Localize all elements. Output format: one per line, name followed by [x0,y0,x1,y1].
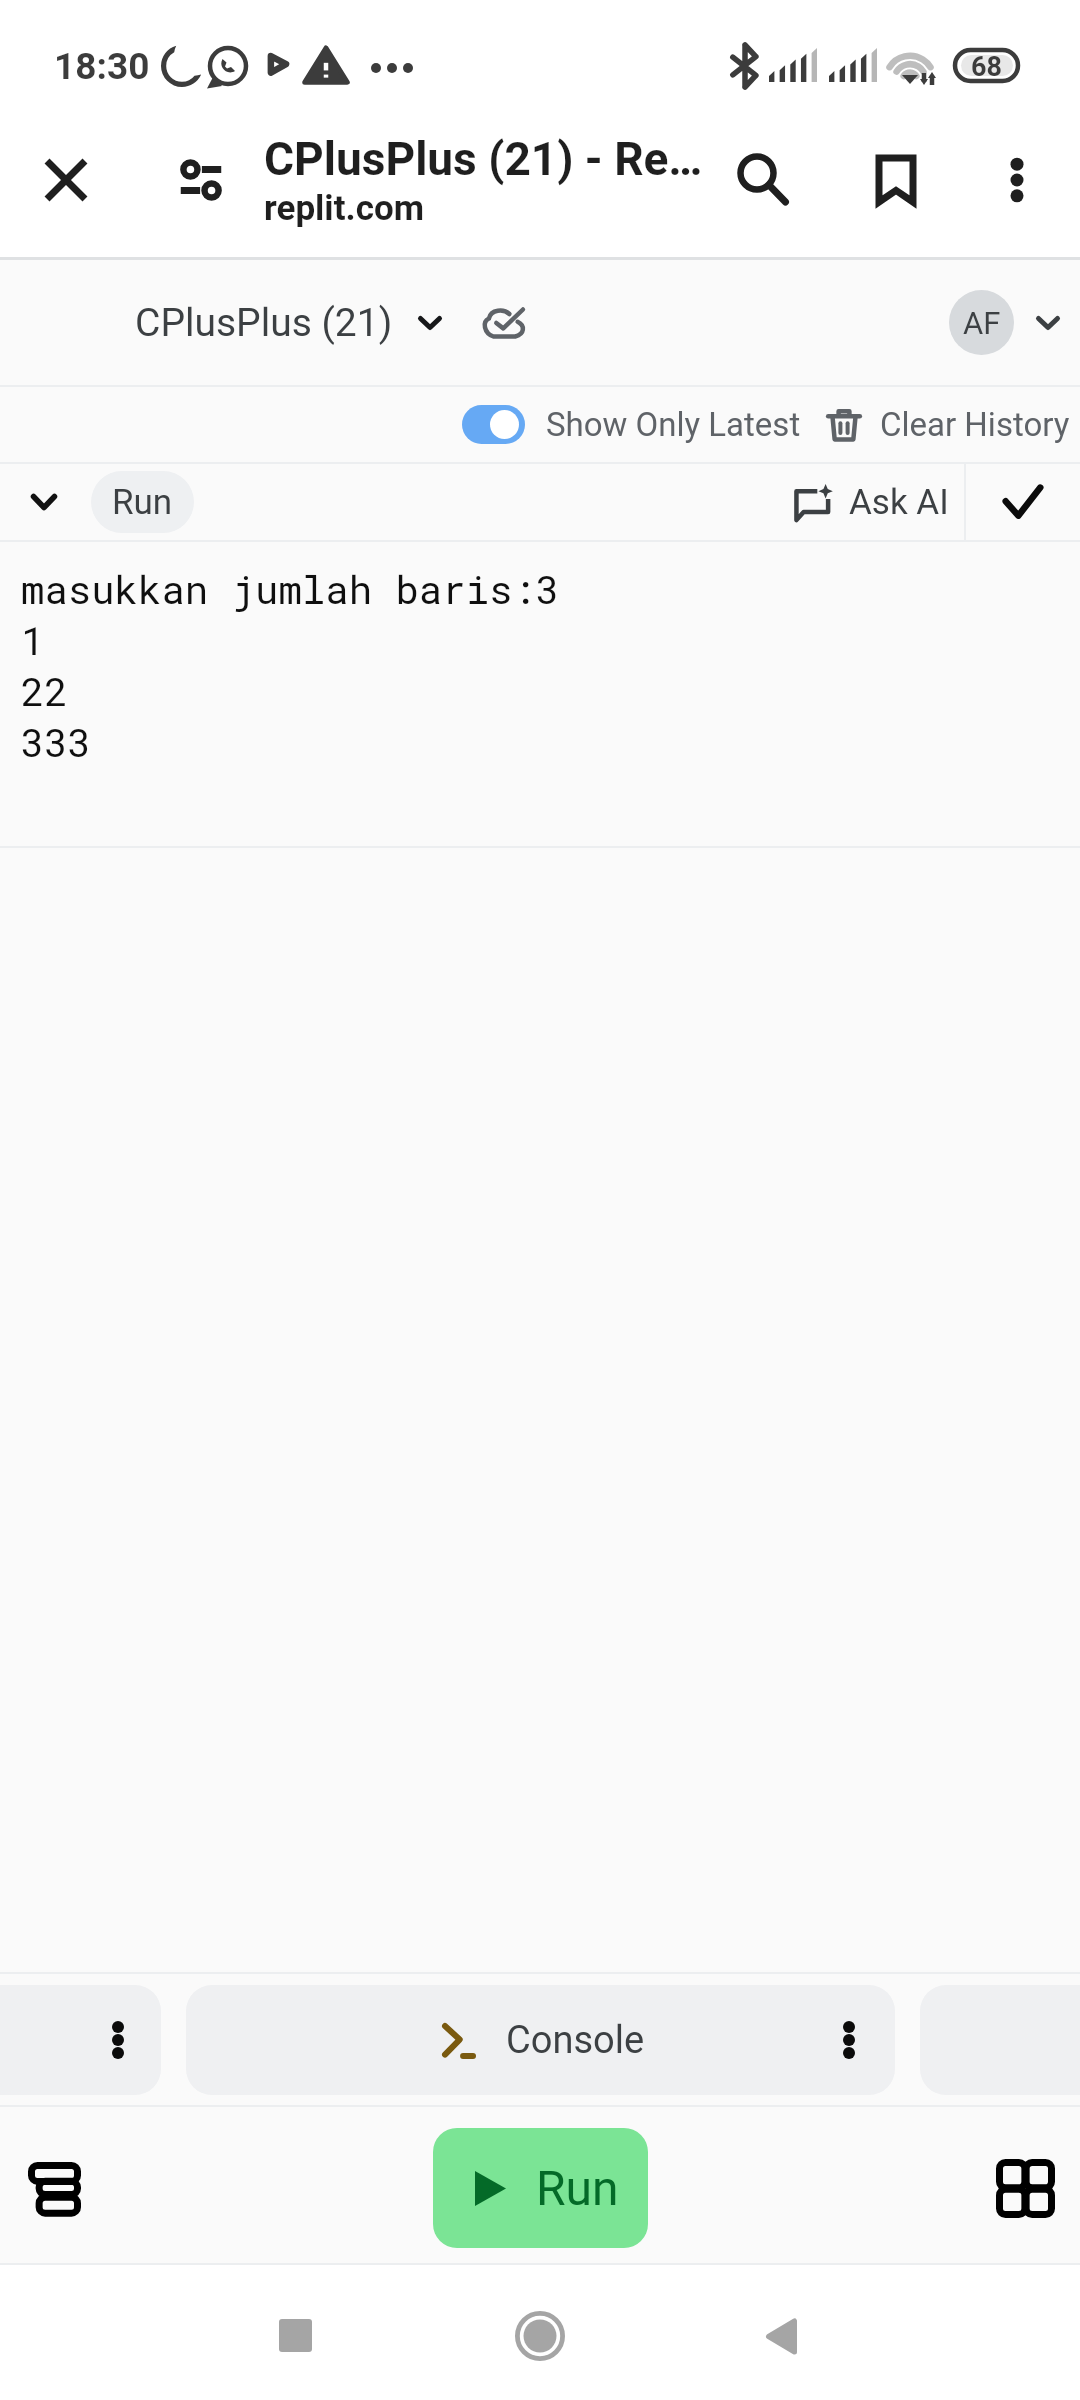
button[interactable]: Run [91,471,194,533]
button[interactable]: Search [717,134,809,226]
button[interactable]: CPlusPlus (21) [135,260,442,385]
staticText: replit.com [264,188,425,229]
button[interactable]: Close [20,134,112,226]
button[interactable]: Collapse [0,464,88,540]
button[interactable]: Console options [803,1985,895,2095]
staticText: CPlusPlus (21) [135,300,393,346]
staticText: AF [963,305,1001,341]
button[interactable]: CPlusPlus (21) - Re… [264,132,714,229]
button[interactable]: Back [721,2276,841,2396]
button[interactable]: Previous tab [0,1985,161,2095]
staticText: Run [536,2160,619,2216]
button[interactable]: More options [971,134,1063,226]
staticText: masukkan jumlah baris:3 [21,563,560,614]
button[interactable]: Recents [235,2275,355,2395]
button[interactable]: Console [186,1985,895,2095]
button[interactable]: Run [433,2128,648,2248]
staticText: 333 [21,716,92,767]
button[interactable]: Layout [0,2133,109,2243]
button[interactable]: Saved [468,260,540,385]
staticText: 18:30 [54,45,150,88]
staticText: Run [112,482,173,523]
staticText: 22 [21,665,68,716]
button[interactable]: Bookmark [850,134,942,226]
button[interactable]: AF [949,290,1060,355]
staticText: 68 [971,51,1002,83]
button[interactable]: Show Only Latest [462,387,801,462]
button[interactable]: Page info [155,134,247,226]
button[interactable]: Done [966,464,1080,540]
staticText: Clear History [880,405,1070,444]
button[interactable]: Apps [970,2133,1080,2243]
staticText: 1 [21,614,45,665]
staticText: Ask AI [849,482,949,523]
button[interactable]: Home [480,2276,600,2396]
staticText: CPlusPlus (21) - Re… [264,132,703,186]
staticText: Console [506,2018,645,2063]
staticText: Show Only Latest [546,405,801,444]
button[interactable]: Clear History [826,405,1070,444]
button[interactable]: Ask AI [785,464,963,540]
